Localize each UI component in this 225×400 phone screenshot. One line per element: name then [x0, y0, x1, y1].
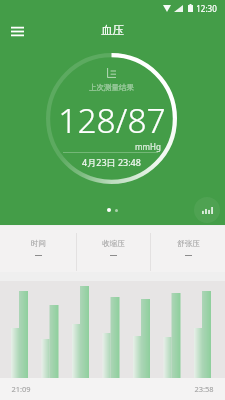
staticText: 21:09 — [11, 384, 31, 394]
button[interactable]: 收缩压 — [77, 226, 150, 272]
staticText: 上次测量结果 — [89, 83, 134, 92]
button[interactable]: Menu — [4, 18, 30, 44]
button[interactable]: 时间 — [0, 226, 76, 272]
staticText: 舒张压 — [177, 239, 200, 248]
staticText: 4月23日 23:48 — [82, 156, 141, 168]
button[interactable]: Statistics — [194, 197, 220, 223]
staticText: mmHg — [135, 141, 161, 152]
staticText: 12:30 — [196, 3, 217, 14]
staticText: 23:58 — [194, 384, 214, 394]
staticText: 128/87 — [58, 97, 166, 143]
button[interactable]: 舒张压 — [151, 226, 225, 272]
staticText: 收缩压 — [102, 239, 125, 248]
staticText: 血压 — [101, 23, 124, 37]
staticText: 时间 — [31, 239, 46, 248]
